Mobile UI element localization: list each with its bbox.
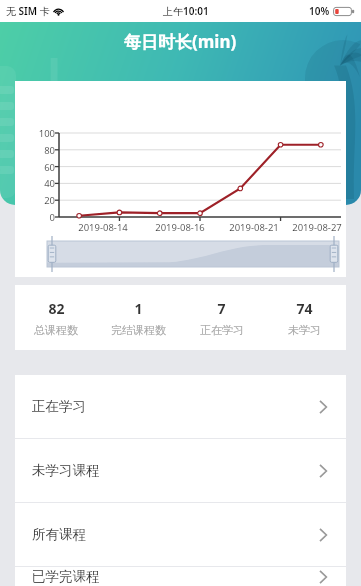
staticText: 2019-08-27 [283,221,351,234]
staticText: 74 [296,299,313,318]
staticText: 2019-08-16 [146,221,214,234]
button[interactable]: 未学习课程 [15,439,346,502]
staticText: 0 [17,211,55,224]
staticText: 60 [17,161,55,174]
staticText: 总课程数 [34,323,78,337]
button[interactable]: 82 [15,285,97,350]
staticText: 无 SIM 卡 [6,4,50,18]
button[interactable]: 已学完课程 [15,567,346,586]
button[interactable]: 所有课程 [15,503,346,566]
staticText: 80 [17,144,55,157]
staticText: 20 [17,194,55,207]
staticText: 完结课程数 [111,323,166,337]
button[interactable]: 74 [263,285,346,350]
staticText: 1 [134,299,143,318]
staticText: 82 [48,299,65,318]
staticText: 10% [309,4,330,18]
button[interactable]: 1 [97,285,180,350]
staticText: 正在学习 [32,398,86,415]
staticText: 正在学习 [200,323,244,337]
staticText: 未学习 [288,323,321,337]
staticText: 每日时长(min) [124,30,237,53]
staticText: 2019-08-14 [69,221,137,234]
button[interactable]: 7 [180,285,263,350]
staticText: 已学完课程 [32,568,100,585]
staticText: 2019-08-21 [220,221,288,234]
staticText: 上午10:01 [163,4,209,18]
button[interactable]: 正在学习 [15,375,346,438]
staticText: 所有课程 [32,526,86,543]
staticText: 40 [17,177,55,190]
staticText: 100 [17,127,55,140]
staticText: 未学习课程 [32,462,100,479]
staticText: 7 [217,299,226,318]
